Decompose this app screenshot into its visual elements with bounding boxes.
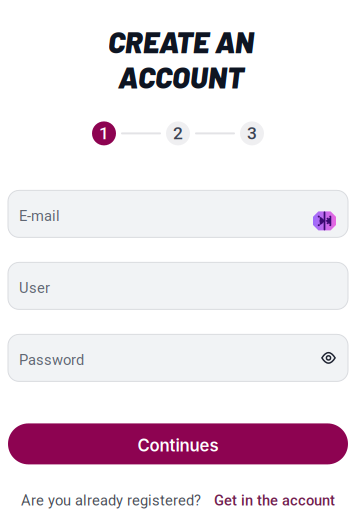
staticText: E-mail [19,207,60,224]
staticText: Continues [137,435,218,455]
staticText: CREATE AN [108,24,254,59]
staticText: 1 [99,123,109,143]
staticText: 2 [173,123,183,143]
button[interactable]: Get in the account [214,492,335,509]
staticText: User [19,279,50,296]
staticText: 3 [247,123,257,143]
staticText: ACCOUNT [118,59,244,94]
staticText: Are you already registered? [21,492,201,509]
staticText: Password [19,351,84,368]
button[interactable]: Continues [8,423,348,464]
staticText: Get in the account [214,492,335,509]
